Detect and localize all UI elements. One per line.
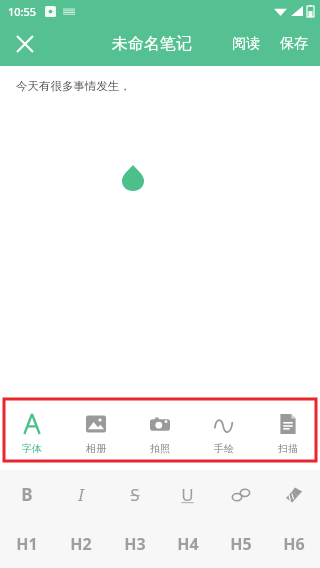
staticText: 阅读 xyxy=(232,35,260,53)
button[interactable]: 字体 xyxy=(0,406,64,463)
staticText: H5 xyxy=(230,533,252,555)
staticText: H6 xyxy=(283,533,305,555)
staticText: S xyxy=(130,483,140,506)
staticText: H3 xyxy=(124,533,146,555)
button[interactable]: H1 xyxy=(0,519,54,568)
staticText: H2 xyxy=(70,533,92,555)
staticText: 今天有很多事情发生， xyxy=(16,79,131,93)
staticText: I xyxy=(78,483,84,506)
button[interactable]: H2 xyxy=(54,519,108,568)
button[interactable]: 保存 xyxy=(270,27,320,61)
button[interactable]: H5 xyxy=(214,519,267,568)
button[interactable]: Link xyxy=(214,470,267,519)
button[interactable]: Clear formatting xyxy=(267,470,320,519)
button[interactable]: I xyxy=(54,470,108,519)
staticText: 10:55 xyxy=(8,4,37,19)
staticText: 保存 xyxy=(280,35,308,53)
staticText: 扫描 xyxy=(278,442,298,455)
staticText: 未命名笔记 xyxy=(112,34,192,54)
staticText: H1 xyxy=(16,533,38,555)
staticText: 字体 xyxy=(22,442,42,455)
button[interactable]: Close xyxy=(6,25,44,63)
button[interactable]: B xyxy=(0,470,54,519)
button[interactable]: 阅读 xyxy=(222,27,270,61)
button[interactable]: U xyxy=(161,470,214,519)
staticText: H4 xyxy=(177,533,199,555)
button[interactable]: S xyxy=(108,470,161,519)
staticText: 手绘 xyxy=(214,442,234,455)
button[interactable]: 拍照 xyxy=(128,406,192,463)
button[interactable]: H6 xyxy=(267,519,320,568)
button[interactable]: H3 xyxy=(108,519,161,568)
staticText: 相册 xyxy=(86,442,106,455)
staticText: 拍照 xyxy=(150,442,170,455)
button[interactable]: 手绘 xyxy=(192,406,256,463)
staticText: U xyxy=(181,483,194,506)
button[interactable]: H4 xyxy=(161,519,214,568)
staticText: B xyxy=(21,483,33,506)
button[interactable]: 相册 xyxy=(64,406,128,463)
button[interactable]: 扫描 xyxy=(256,406,320,463)
